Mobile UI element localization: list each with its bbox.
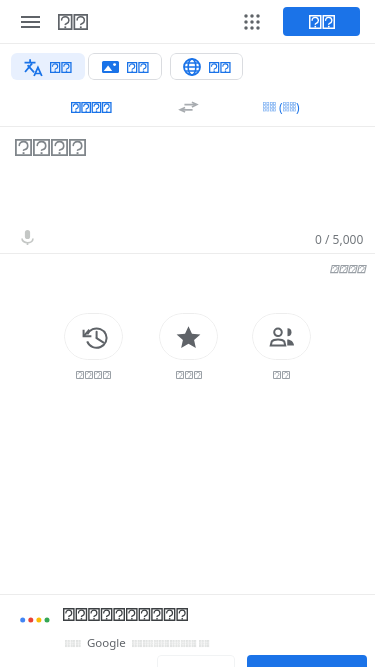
button[interactable]: Main menu xyxy=(12,4,48,40)
button[interactable] xyxy=(330,265,368,273)
staticText: Google xyxy=(81,635,132,651)
button[interactable] xyxy=(64,313,123,379)
button[interactable] xyxy=(159,313,218,379)
button[interactable] xyxy=(11,53,85,80)
button[interactable] xyxy=(283,7,360,36)
button[interactable] xyxy=(15,139,86,156)
button[interactable] xyxy=(247,655,367,667)
button[interactable] xyxy=(252,313,311,379)
button[interactable] xyxy=(31,92,151,122)
button[interactable]: Swap languages xyxy=(172,91,204,123)
button[interactable]: ( xyxy=(221,92,341,122)
staticText: ) xyxy=(296,99,300,115)
button[interactable] xyxy=(88,53,162,80)
button[interactable]: Translate by voice xyxy=(11,221,43,253)
staticText: 0 / 5,000 xyxy=(315,231,364,247)
button[interactable] xyxy=(170,53,243,80)
button[interactable] xyxy=(157,655,235,667)
button[interactable]: Google apps xyxy=(234,4,270,40)
staticText: ( xyxy=(276,99,283,115)
